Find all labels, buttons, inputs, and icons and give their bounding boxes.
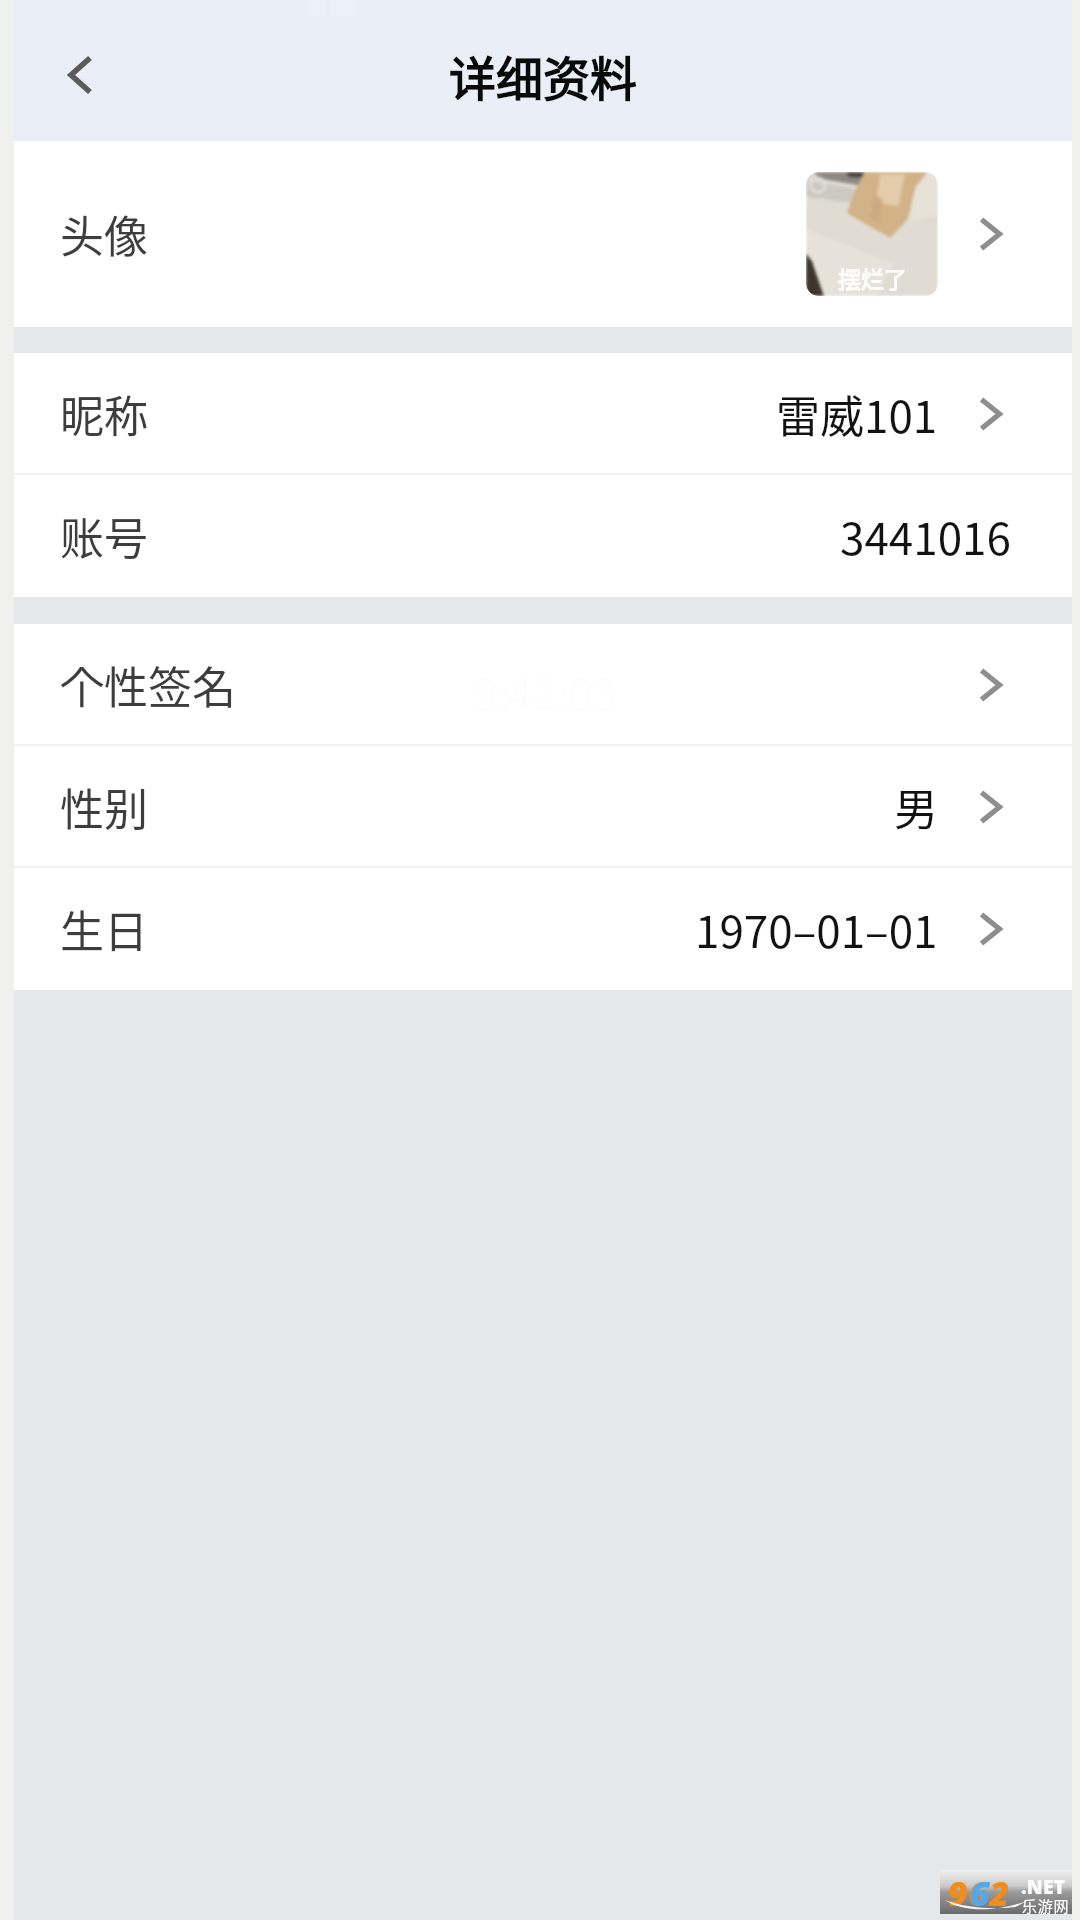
staticText: 乐游网: [1022, 1895, 1070, 1917]
staticText: 1970–01–01: [695, 897, 938, 961]
staticText: 6: [970, 1870, 990, 1914]
button[interactable]: 个性签名: [14, 624, 1072, 746]
staticText: 详细资料: [449, 41, 637, 109]
staticText: 昵称: [60, 382, 148, 446]
staticText: 头像: [60, 202, 148, 266]
button[interactable]: 头像: [14, 141, 1072, 327]
button[interactable]: Back: [25, 15, 135, 135]
button[interactable]: 账号: [14, 475, 1072, 597]
button[interactable]: 生日: [14, 868, 1072, 990]
button[interactable]: 昵称: [14, 353, 1072, 475]
staticText: 962: [948, 1870, 1011, 1914]
staticText: .NET: [1021, 1874, 1066, 1900]
button[interactable]: 性别: [14, 746, 1072, 868]
staticText: 3441016: [840, 504, 1011, 568]
staticText: 雷威101: [776, 382, 938, 446]
staticText: 账号: [60, 504, 148, 568]
staticText: 生日: [60, 897, 148, 961]
staticText: 个性签名: [60, 653, 236, 717]
staticText: 男: [894, 775, 938, 839]
staticText: 摆烂了: [838, 261, 907, 294]
staticText: 性别: [60, 775, 148, 839]
